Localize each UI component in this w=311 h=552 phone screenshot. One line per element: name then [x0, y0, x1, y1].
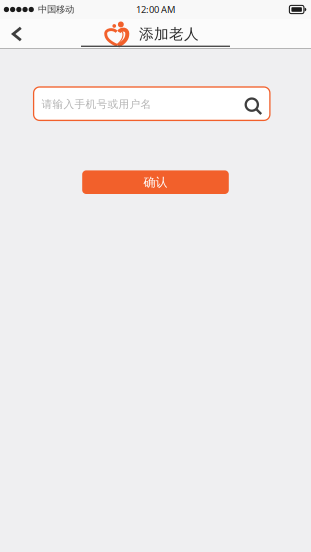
staticText: 添加老人: [139, 25, 199, 43]
staticText: 确认: [143, 175, 167, 189]
button[interactable]: 确认: [82, 170, 229, 194]
button[interactable]: 请输入手机号或用户名: [34, 87, 270, 120]
staticText: 中国移动: [38, 4, 74, 15]
staticText: 请输入手机号或用户名: [42, 98, 152, 111]
staticText: 12:00 AM: [136, 3, 175, 16]
button[interactable]: Back: [0, 19, 34, 48]
